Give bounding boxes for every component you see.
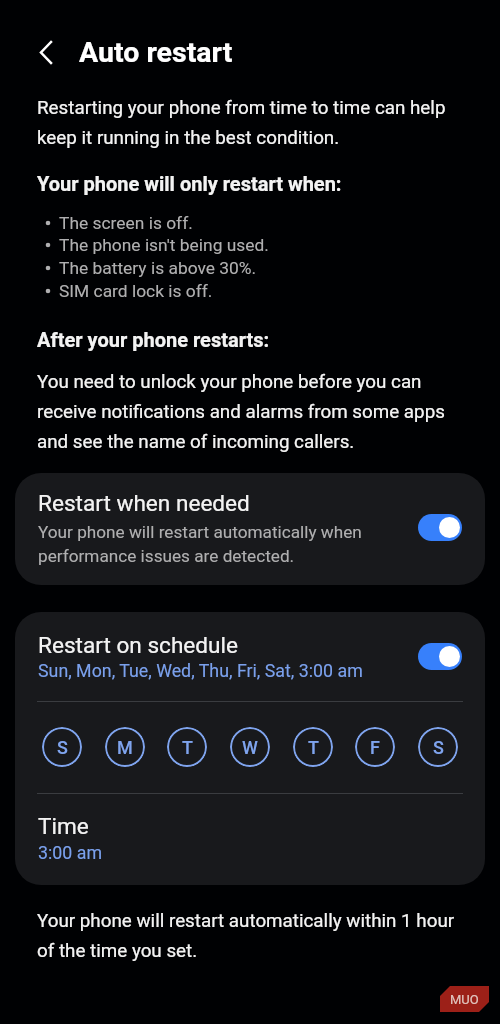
button[interactable]: Thursday	[293, 727, 333, 767]
button[interactable]: Restart on schedule, on	[418, 643, 462, 670]
staticText: Restart on schedule	[38, 632, 239, 658]
staticText: MUO	[450, 992, 479, 1007]
staticText: T	[308, 737, 319, 758]
button[interactable]: Wednesday	[230, 727, 270, 767]
button[interactable]: Monday	[105, 727, 145, 767]
staticText: 3:00 am	[38, 842, 103, 863]
button[interactable]: Saturday	[418, 727, 458, 767]
button[interactable]: Back	[26, 33, 65, 71]
button[interactable]: Tuesday	[167, 727, 207, 767]
button[interactable]: Restart when needed, on	[418, 514, 462, 541]
button[interactable]: Restart when needed	[15, 473, 485, 585]
staticText: Sun, Mon, Tue, Wed, Thu, Fri, Sat, 3:00 …	[38, 660, 363, 681]
staticText: The phone isn't being used.	[59, 235, 269, 255]
staticText: The battery is above 30%.	[59, 258, 257, 278]
staticText: Your phone will only restart when:	[37, 172, 342, 195]
button[interactable]: Sunday	[42, 727, 82, 767]
staticText: T	[182, 737, 193, 758]
staticText: The screen is off.	[59, 213, 193, 233]
button[interactable]: Friday	[355, 727, 395, 767]
staticText: F	[370, 737, 380, 758]
staticText: Your phone will restart automatically wi…	[37, 903, 462, 963]
button[interactable]: Time	[15, 794, 485, 885]
staticText: Auto restart	[79, 36, 233, 69]
staticText: Restarting your phone from time to time …	[37, 90, 462, 150]
staticText: Restart when needed	[38, 490, 250, 516]
staticText: Time	[38, 813, 89, 839]
staticText: You need to unlock your phone before you…	[37, 364, 462, 454]
staticText: S	[433, 737, 444, 758]
staticText: W	[242, 737, 258, 758]
staticText: Your phone will restart automatically wh…	[38, 519, 410, 567]
staticText: S	[57, 737, 68, 758]
staticText: After your phone restarts:	[37, 328, 270, 351]
staticText: SIM card lock is off.	[59, 281, 213, 301]
staticText: M	[117, 737, 133, 758]
button[interactable]: Restart on schedule	[15, 612, 485, 701]
